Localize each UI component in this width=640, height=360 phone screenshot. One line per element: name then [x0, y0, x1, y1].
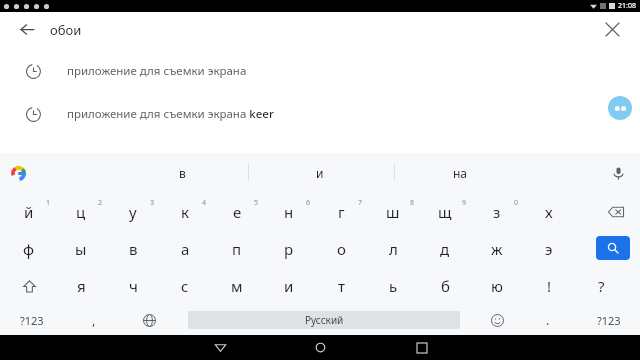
button[interactable]: ?123: [3, 305, 61, 335]
staticText: .: [546, 311, 550, 329]
staticText: и: [284, 276, 294, 296]
staticText: а: [181, 239, 190, 259]
staticText: л: [389, 239, 398, 259]
staticText: р: [284, 239, 294, 259]
button[interactable]: я: [55, 268, 107, 304]
button[interactable]: приложение для съемки экрана keer: [0, 94, 640, 134]
staticText: приложение для съемки экрана: [67, 63, 247, 79]
staticText: 3: [150, 198, 155, 208]
button[interactable]: л: [367, 231, 419, 267]
button[interactable]: Period: [524, 305, 572, 335]
button[interactable]: Emoji: [474, 305, 520, 335]
staticText: в: [179, 165, 186, 181]
staticText: на: [453, 165, 468, 181]
staticText: т: [338, 276, 345, 296]
staticText: ю: [491, 276, 503, 296]
staticText: 4: [202, 198, 207, 208]
button[interactable]: у: [107, 194, 159, 230]
button[interactable]: Русский: [188, 311, 460, 329]
staticText: ч: [129, 276, 138, 296]
button[interactable]: г: [315, 194, 367, 230]
button[interactable]: ж: [471, 231, 523, 267]
staticText: ?123: [597, 313, 621, 328]
button[interactable]: т: [315, 268, 367, 304]
staticText: ?: [598, 276, 605, 296]
button[interactable]: в: [107, 231, 159, 267]
staticText: ы: [75, 239, 87, 259]
staticText: в: [129, 239, 138, 259]
button[interactable]: в: [137, 153, 227, 192]
button[interactable]: ф: [3, 231, 55, 267]
button[interactable]: р: [263, 231, 315, 267]
staticText: я: [77, 276, 86, 296]
staticText: у: [129, 202, 137, 222]
button[interactable]: Comma: [70, 305, 118, 335]
button[interactable]: б: [419, 268, 471, 304]
button[interactable]: Change language: [126, 305, 172, 335]
button[interactable]: Clear search: [598, 15, 626, 43]
staticText: х: [545, 202, 553, 222]
staticText: 1: [46, 198, 51, 208]
staticText: 8: [410, 198, 415, 208]
button[interactable]: и: [275, 153, 365, 192]
button[interactable]: Backspace: [592, 194, 640, 230]
staticText: к: [181, 202, 189, 222]
button[interactable]: Back: [13, 15, 41, 43]
button[interactable]: Shift: [3, 268, 55, 304]
button[interactable]: ь: [367, 268, 419, 304]
staticText: ф: [23, 239, 35, 259]
staticText: э: [545, 239, 553, 259]
button[interactable]: ы: [55, 231, 107, 267]
staticText: б: [441, 276, 450, 296]
staticText: й: [24, 202, 34, 222]
staticText: н: [284, 202, 294, 222]
button[interactable]: приложение для съемки экрана: [0, 51, 640, 91]
button[interactable]: Recent apps: [400, 335, 444, 360]
button[interactable]: з: [471, 194, 523, 230]
button[interactable]: ц: [55, 194, 107, 230]
button[interactable]: Home: [298, 335, 342, 360]
staticText: Русский: [305, 313, 344, 327]
button[interactable]: х: [523, 194, 575, 230]
button[interactable]: ш: [367, 194, 419, 230]
button[interactable]: п: [211, 231, 263, 267]
button[interactable]: д: [419, 231, 471, 267]
staticText: 5: [254, 198, 259, 208]
button[interactable]: о: [315, 231, 367, 267]
staticText: 6: [306, 198, 311, 208]
staticText: з: [493, 202, 501, 222]
button[interactable]: э: [523, 231, 575, 267]
button[interactable]: на: [415, 153, 505, 192]
button[interactable]: Google: [6, 161, 30, 185]
button[interactable]: м: [211, 268, 263, 304]
staticText: ь: [389, 276, 398, 296]
button[interactable]: с: [159, 268, 211, 304]
staticText: ц: [76, 202, 86, 222]
staticText: 0: [514, 198, 519, 208]
staticText: г: [338, 202, 345, 222]
button[interactable]: и: [263, 268, 315, 304]
staticText: 9: [462, 198, 467, 208]
button[interactable]: ?: [575, 268, 627, 304]
button[interactable]: й: [3, 194, 55, 230]
button[interactable]: е: [211, 194, 263, 230]
button[interactable]: ?123: [580, 305, 638, 335]
button[interactable]: н: [263, 194, 315, 230]
button[interactable]: !: [523, 268, 575, 304]
button[interactable]: Account: [608, 96, 632, 120]
button[interactable]: Back: [198, 335, 242, 360]
button[interactable]: ю: [471, 268, 523, 304]
button[interactable]: а: [159, 231, 211, 267]
staticText: обои: [50, 21, 82, 39]
staticText: м: [231, 276, 243, 296]
staticText: 2: [98, 198, 103, 208]
button[interactable]: к: [159, 194, 211, 230]
staticText: !: [547, 276, 552, 296]
staticText: о: [337, 239, 346, 259]
button[interactable]: Voice input: [606, 161, 630, 185]
staticText: е: [233, 202, 242, 222]
button[interactable]: Search: [596, 236, 630, 260]
staticText: ?123: [20, 313, 44, 328]
button[interactable]: ч: [107, 268, 159, 304]
button[interactable]: щ: [419, 194, 471, 230]
